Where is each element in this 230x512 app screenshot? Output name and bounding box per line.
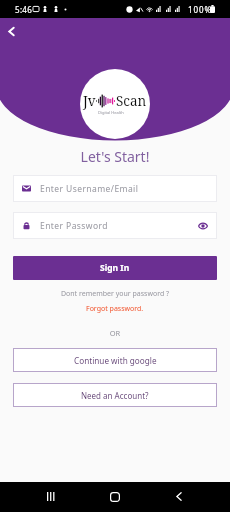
staticText: 5:46: [15, 4, 33, 15]
staticText: OR: [0, 328, 230, 338]
staticText: Dont remember your password ?: [0, 289, 230, 299]
button[interactable]: Home: [103, 485, 126, 508]
button[interactable]: Continue with google: [13, 348, 217, 372]
staticText: Let's Start!: [0, 147, 230, 166]
staticText: Continue with google: [74, 355, 157, 366]
button[interactable]: Enter Username/Email: [13, 175, 217, 202]
button[interactable]: Need an Account?: [13, 383, 217, 407]
staticText: Need an Account?: [81, 390, 149, 401]
staticText: 100%: [188, 4, 212, 15]
staticText: Sign In: [100, 262, 130, 274]
staticText: Scan: [116, 92, 147, 110]
staticText: Jv: [83, 92, 96, 110]
button[interactable]: Show password: [196, 219, 210, 233]
staticText: Digital Health: [98, 110, 124, 115]
button[interactable]: Sign In: [13, 256, 217, 280]
button[interactable]: Enter Password: [13, 212, 217, 239]
button[interactable]: Back: [167, 485, 190, 508]
staticText: Enter Username/Email: [40, 183, 139, 195]
button[interactable]: Forgot password.: [86, 304, 144, 314]
button[interactable]: Recent apps: [39, 485, 62, 508]
button[interactable]: Back: [1, 21, 21, 41]
staticText: Enter Password: [40, 220, 108, 232]
